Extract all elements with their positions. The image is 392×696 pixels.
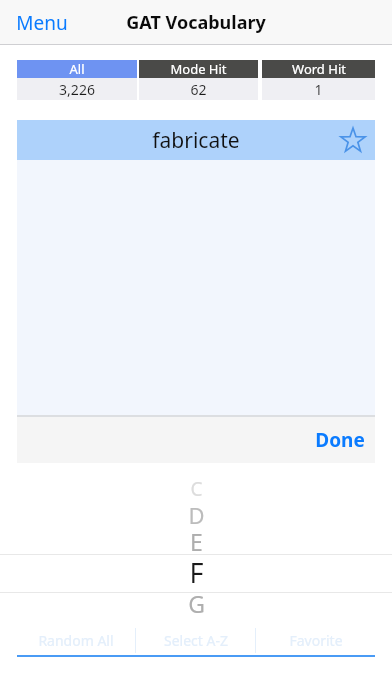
staticText: GAT Vocabulary: [126, 10, 266, 35]
staticText: G: [188, 588, 205, 619]
staticText: Done: [315, 427, 365, 453]
button[interactable]: Menu: [10, 4, 74, 42]
staticText: 3,226: [59, 80, 95, 99]
staticText: D: [188, 500, 205, 530]
staticText: F: [189, 554, 204, 591]
staticText: 62: [190, 80, 207, 99]
button[interactable]: Favorite: [256, 628, 375, 653]
staticText: Menu: [16, 10, 68, 36]
staticText: Select A-Z: [164, 631, 228, 650]
staticText: fabricate: [152, 126, 240, 155]
staticText: Random All: [38, 631, 114, 650]
button[interactable]: Favorite: [337, 124, 369, 156]
staticText: C: [190, 476, 203, 502]
button[interactable]: fabricate: [17, 120, 375, 160]
button[interactable]: Word Hit: [262, 60, 375, 100]
staticText: Mode Hit: [170, 60, 227, 78]
staticText: E: [190, 526, 203, 557]
button[interactable]: Select A-Z: [136, 628, 255, 653]
staticText: Favorite: [289, 631, 343, 650]
button[interactable]: Done: [305, 421, 375, 459]
staticText: 1: [314, 80, 323, 99]
staticText: Word Hit: [292, 60, 346, 78]
button[interactable]: All: [17, 60, 137, 100]
button[interactable]: Random All: [17, 628, 135, 653]
staticText: H: [187, 619, 205, 652]
button[interactable]: Mode Hit: [139, 60, 258, 100]
staticText: All: [69, 60, 85, 78]
